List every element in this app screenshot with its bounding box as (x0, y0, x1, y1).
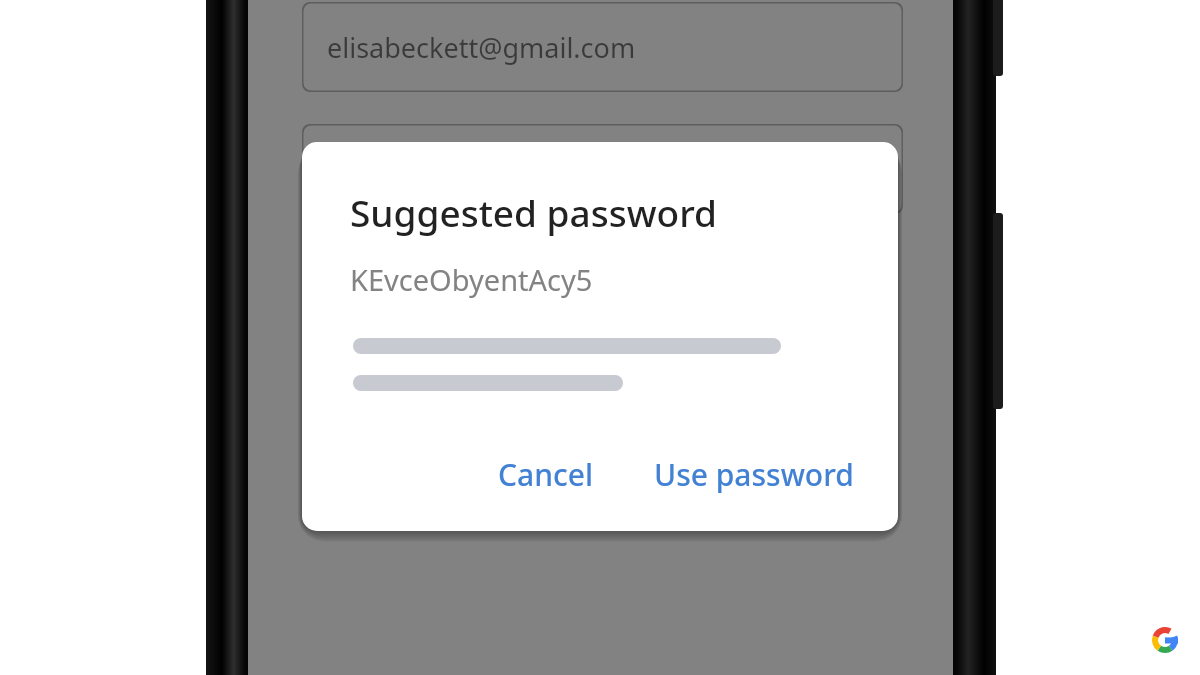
staticText: Cancel (498, 454, 594, 495)
other: Google (1152, 627, 1178, 653)
staticText: KEvceObyentAcy5 (350, 260, 593, 299)
staticText: Use password (654, 454, 854, 495)
button[interactable]: elisabeckett@gmail.com (302, 2, 903, 92)
staticText: Suggested password (350, 187, 718, 237)
button[interactable] (302, 124, 903, 214)
button[interactable]: Cancel (484, 444, 608, 505)
staticText: elisabeckett@gmail.com (327, 29, 636, 66)
button[interactable]: Use password (640, 444, 868, 505)
